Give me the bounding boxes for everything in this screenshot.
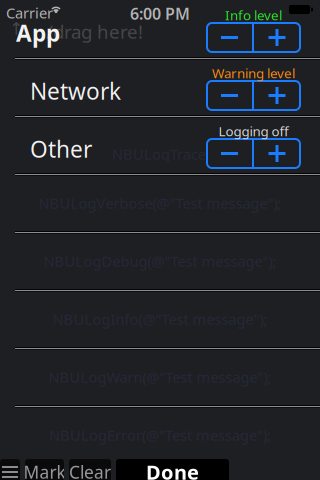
staticText: Carrier bbox=[6, 3, 53, 22]
button[interactable]: Decrease level bbox=[207, 139, 252, 168]
staticText: NBULogInfo(@"Test message"); bbox=[52, 309, 267, 329]
staticText: NBULogVerbose(@"Test message"); bbox=[38, 193, 281, 213]
staticText: Info level bbox=[225, 6, 282, 24]
staticText: NBULogTrace(@"Test message"); bbox=[112, 144, 320, 164]
staticText: App bbox=[16, 18, 60, 48]
staticText: 6:00 PM bbox=[130, 3, 190, 24]
staticText: Logging off bbox=[218, 122, 288, 140]
staticText: NBULogError(@"Test message"); bbox=[49, 425, 271, 445]
staticText: /drag here! bbox=[46, 19, 143, 44]
button[interactable]: Mark bbox=[25, 459, 64, 480]
button[interactable]: Decrease level bbox=[207, 81, 252, 110]
button[interactable]: Increase level bbox=[254, 23, 300, 52]
staticText: Mark bbox=[23, 460, 65, 480]
staticText: Clear bbox=[69, 460, 111, 480]
staticText: NBULogDebug(@"Test message"); bbox=[43, 251, 276, 271]
staticText: Network bbox=[30, 76, 121, 106]
button[interactable]: Done bbox=[116, 459, 229, 480]
button[interactable]: Increase level bbox=[254, 81, 300, 110]
button[interactable]: Increase level bbox=[254, 139, 300, 168]
staticText: Done bbox=[146, 459, 199, 480]
button[interactable]: Decrease level bbox=[207, 23, 252, 52]
staticText: Other bbox=[30, 134, 92, 164]
button[interactable]: Menu bbox=[0, 459, 20, 480]
staticText: Warning level bbox=[212, 64, 295, 82]
staticText: NBULogWarn(@"Test message"); bbox=[48, 367, 271, 387]
button[interactable]: Clear bbox=[69, 459, 111, 480]
staticText: ↑ bbox=[9, 19, 24, 39]
